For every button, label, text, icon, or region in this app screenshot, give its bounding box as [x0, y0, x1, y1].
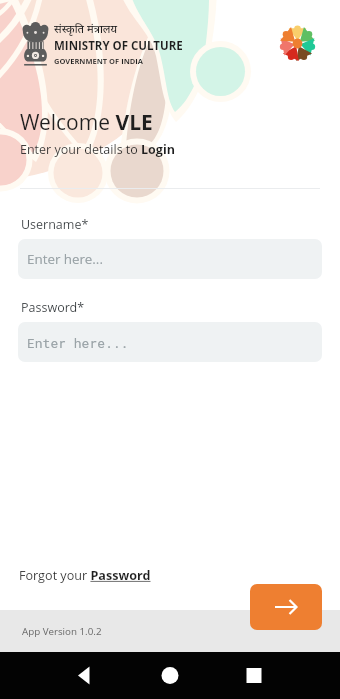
- staticText: Username*: [21, 216, 89, 233]
- staticText: Enter your details to Login: [20, 141, 175, 158]
- staticText: GOVERNMENT OF INDIA: [54, 56, 143, 66]
- button[interactable]: Enter here...: [18, 239, 322, 279]
- staticText: MINISTRY OF CULTURE: [54, 38, 183, 54]
- button[interactable]: Submit login: [250, 584, 322, 630]
- staticText: Welcome VLE: [20, 108, 153, 137]
- staticText: Enter here...: [27, 250, 103, 268]
- staticText: संस्कृति मंत्रालय: [54, 21, 118, 36]
- staticText: Forgot your Password: [19, 567, 151, 584]
- button[interactable]: Forgot your Password: [19, 567, 340, 584]
- staticText: App Version 1.0.2: [22, 625, 102, 638]
- staticText: Password*: [21, 299, 85, 316]
- staticText: Enter here...: [27, 334, 129, 351]
- button[interactable]: Enter here...: [18, 322, 322, 362]
